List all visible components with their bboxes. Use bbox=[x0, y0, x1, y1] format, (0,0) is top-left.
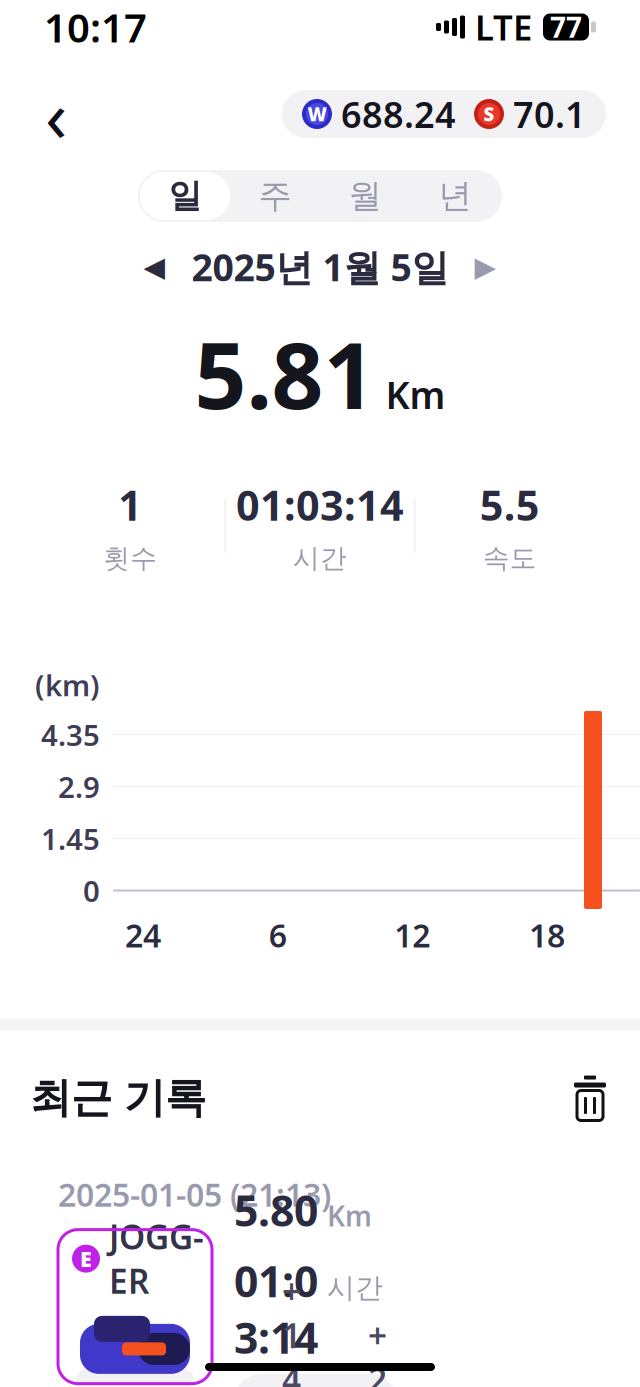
staticText: ‹ bbox=[45, 66, 67, 162]
staticText: 70.1 bbox=[513, 90, 586, 138]
staticText: ▶ bbox=[474, 251, 496, 283]
staticText: 10:17 bbox=[44, 0, 147, 53]
staticText: 시간 bbox=[327, 1271, 383, 1305]
staticText: 77 bbox=[550, 8, 582, 46]
button[interactable]: 2025-01-05 (21:13) bbox=[36, 1153, 604, 1381]
staticText: 0 bbox=[83, 871, 100, 910]
button[interactable]: Next day bbox=[462, 244, 508, 290]
staticText: 12 bbox=[394, 914, 430, 956]
button[interactable]: 년 bbox=[410, 172, 500, 220]
button[interactable]: Wallet balance bbox=[282, 90, 606, 138]
staticText: 월 bbox=[348, 175, 381, 216]
button[interactable]: 월 bbox=[320, 172, 410, 220]
staticText: JOGGER bbox=[109, 1214, 204, 1303]
staticText: 01:03:14 bbox=[234, 1252, 318, 1366]
staticText: 2025년 1월 5일 bbox=[191, 242, 448, 292]
staticText: 5.5 bbox=[480, 477, 540, 532]
staticText: ◀ bbox=[143, 251, 165, 283]
staticText: 688.24 bbox=[341, 90, 456, 138]
staticText: S bbox=[483, 102, 494, 126]
staticText: 년 bbox=[438, 175, 471, 216]
staticText: 2.9 bbox=[58, 767, 100, 806]
staticText: Km bbox=[385, 370, 445, 419]
staticText: 2025-01-05 (21:13) bbox=[58, 1173, 331, 1216]
staticText: 4.35 bbox=[41, 715, 100, 754]
staticText: 5.80 bbox=[234, 1182, 318, 1238]
staticText: +205 bbox=[368, 1313, 387, 1387]
staticText: +147.45 bbox=[282, 1269, 310, 1387]
staticText: 1.45 bbox=[41, 819, 100, 858]
staticText: Km bbox=[327, 1197, 372, 1234]
button[interactable]: Back bbox=[28, 86, 84, 142]
button[interactable]: 주 bbox=[230, 172, 320, 220]
staticText: 5.81 bbox=[194, 314, 375, 434]
button[interactable]: Delete records bbox=[570, 1076, 610, 1120]
staticText: E bbox=[80, 1244, 92, 1273]
staticText: 최근 기록 bbox=[30, 1073, 206, 1123]
staticText: LTE bbox=[475, 4, 532, 50]
staticText: (km) bbox=[35, 665, 100, 704]
staticText: 시간 bbox=[293, 542, 347, 575]
staticText: 1 bbox=[118, 477, 142, 532]
button[interactable]: Previous day bbox=[131, 244, 177, 290]
staticText: 주 bbox=[258, 175, 291, 216]
staticText: 속도 bbox=[483, 542, 537, 575]
staticText: 6 bbox=[269, 914, 287, 956]
staticText: 횟수 bbox=[103, 542, 157, 575]
staticText: 24 bbox=[125, 914, 161, 956]
staticText: W bbox=[307, 102, 326, 126]
button[interactable]: 일 bbox=[140, 172, 230, 220]
staticText: 01:03:14 bbox=[236, 477, 404, 532]
staticText: 일 bbox=[168, 175, 201, 216]
staticText: 18 bbox=[529, 914, 565, 956]
